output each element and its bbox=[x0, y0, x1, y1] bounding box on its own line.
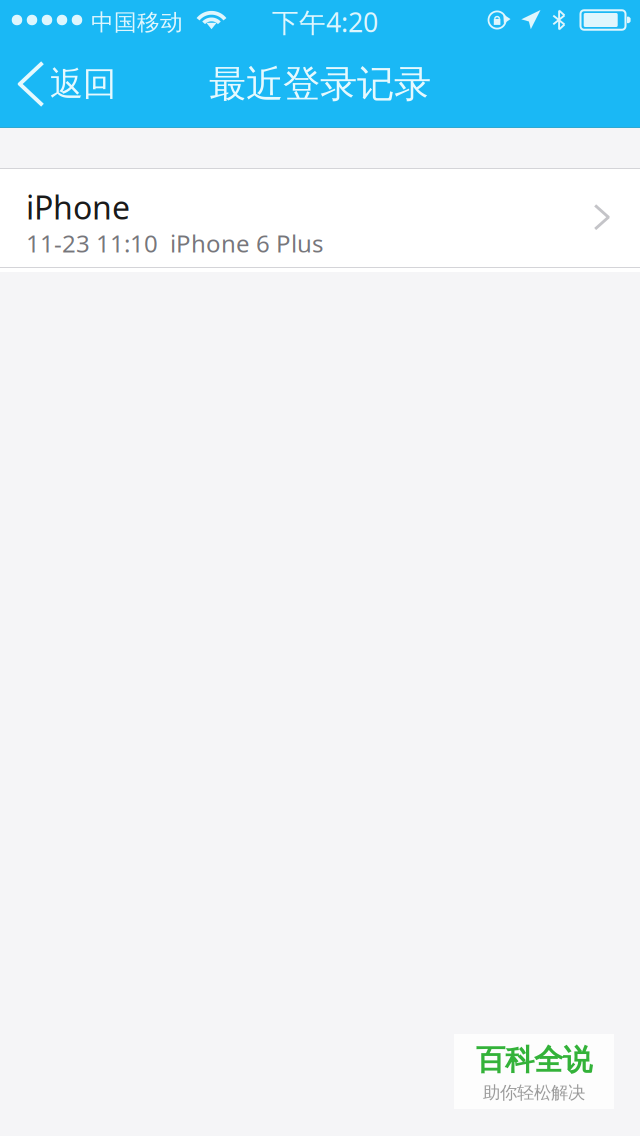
staticText: 最近登录记录 bbox=[209, 61, 431, 107]
staticText: 助你轻松解决 bbox=[483, 1082, 585, 1103]
staticText: iPhone bbox=[26, 186, 130, 228]
button[interactable]: iPhone bbox=[0, 169, 640, 267]
staticText: 百科全说 bbox=[476, 1042, 592, 1078]
staticText: 下午4:20 bbox=[272, 4, 378, 40]
button[interactable]: 返回 bbox=[0, 40, 130, 128]
staticText: 中国移动 bbox=[91, 9, 183, 36]
staticText: 11-23 11:10 iPhone 6 Plus bbox=[26, 227, 323, 259]
staticText: 返回 bbox=[50, 63, 116, 104]
